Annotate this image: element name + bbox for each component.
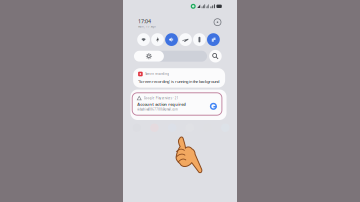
- button[interactable]: Settings: [213, 18, 222, 27]
- button[interactable]: Bluetooth: [151, 33, 164, 46]
- button[interactable]: Search: [209, 50, 222, 62]
- staticText: Screen recording: [145, 72, 169, 76]
- button[interactable]: Auto rotate: [207, 33, 220, 46]
- button[interactable]: Sound: [165, 33, 178, 46]
- button[interactable]: Google Play services · 21: [132, 93, 222, 115]
- button[interactable]: Brightness: [134, 51, 207, 62]
- staticText: 'Screen recording' is running in the bac…: [138, 79, 219, 84]
- button[interactable]: Screen recording: [133, 68, 225, 88]
- staticText: Google Play services · 21: [144, 96, 179, 100]
- staticText: vickyshiva8867788@gmail.com: [137, 108, 177, 111]
- button[interactable]: Wi-Fi: [137, 33, 150, 46]
- staticText: 17:04: [138, 18, 151, 25]
- staticText: Mon, 17 Apr: [138, 25, 156, 28]
- button[interactable]: Flashlight: [193, 33, 206, 46]
- staticText: Account action required: [137, 101, 186, 107]
- button[interactable]: Airplane mode: [179, 33, 192, 46]
